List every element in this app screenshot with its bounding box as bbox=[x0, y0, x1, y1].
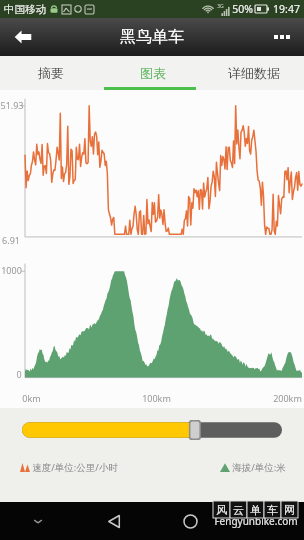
staticText: 摘要 bbox=[38, 65, 64, 81]
staticText: 单 bbox=[250, 503, 261, 517]
staticText: 网 bbox=[284, 503, 295, 517]
staticText: 3G bbox=[217, 3, 224, 10]
staticText: 黑鸟单车 bbox=[120, 27, 184, 47]
staticText: 0km bbox=[22, 392, 41, 404]
button[interactable]: More options bbox=[266, 21, 298, 53]
button[interactable]: Back bbox=[76, 502, 152, 540]
staticText: 19:47 bbox=[273, 2, 300, 16]
button[interactable]: Home bbox=[152, 502, 228, 540]
button[interactable]: 图表 bbox=[102, 56, 203, 90]
staticText: Fengyunbike.com bbox=[214, 514, 298, 528]
staticText: 1000 bbox=[1, 264, 22, 276]
staticText: 详细数据 bbox=[228, 65, 280, 81]
staticText: 车 bbox=[267, 503, 278, 517]
staticText: 0 bbox=[16, 368, 22, 380]
staticText: 速度/单位:公里/小时 bbox=[32, 461, 118, 474]
button[interactable]: 摘要 bbox=[0, 56, 102, 90]
staticText: 51.93 bbox=[0, 99, 24, 111]
button[interactable]: Hide navigation bar bbox=[0, 502, 76, 540]
staticText: 6.91 bbox=[2, 234, 20, 246]
staticText: 图表 bbox=[140, 65, 166, 81]
staticText: 云 bbox=[233, 503, 244, 517]
staticText: 200km bbox=[273, 392, 302, 404]
staticText: 中国移动 bbox=[4, 3, 46, 16]
staticText: 50% bbox=[232, 2, 253, 16]
button[interactable] bbox=[0, 412, 304, 448]
staticText: 100km bbox=[142, 392, 171, 404]
button[interactable]: 详细数据 bbox=[203, 56, 304, 90]
staticText: 海拔/单位:米 bbox=[232, 461, 286, 474]
button[interactable]: Back bbox=[8, 22, 38, 52]
staticText: 风 bbox=[216, 503, 227, 517]
